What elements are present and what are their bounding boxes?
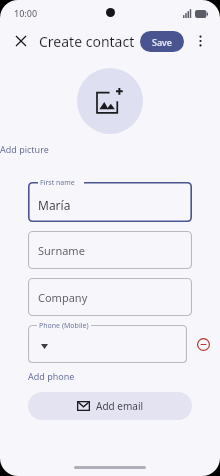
button[interactable]: Add email — [28, 392, 192, 420]
staticText: Create contact — [39, 32, 135, 51]
staticText: Company — [38, 290, 88, 305]
button[interactable]: Add picture — [0, 68, 220, 155]
staticText: Save — [152, 36, 173, 48]
staticText: Phone (Mobile) — [39, 321, 89, 331]
staticText: Add email — [96, 399, 144, 413]
staticText: First name — [40, 178, 75, 188]
button[interactable]: More options — [190, 31, 210, 51]
button[interactable]: Company — [28, 278, 192, 316]
staticText: Surname — [38, 243, 85, 258]
staticText: María — [38, 197, 71, 213]
button[interactable]: Add phone — [28, 370, 75, 382]
button[interactable]: Phone (Mobile) — [28, 325, 187, 363]
button[interactable]: Save — [140, 31, 184, 52]
button[interactable]: Surname — [28, 231, 192, 269]
staticText: Add picture — [0, 143, 220, 155]
button[interactable]: Close — [10, 30, 32, 52]
staticText: 10:00 — [14, 7, 38, 19]
button[interactable]: Remove phone — [192, 333, 214, 355]
button[interactable] — [28, 182, 192, 222]
